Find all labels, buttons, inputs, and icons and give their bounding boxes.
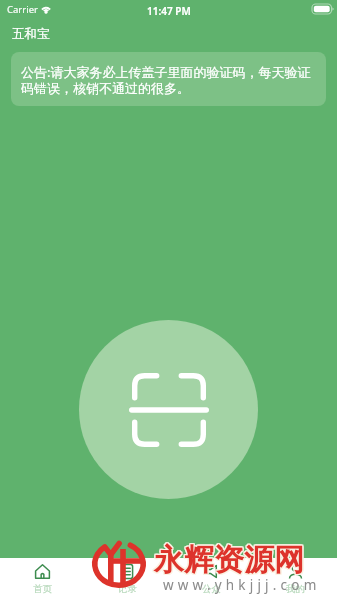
- staticText: 永辉资源网: [154, 540, 304, 578]
- staticText: 公告:请大家务必上传盖子里面的验证码，每天验证码错误，核销不通过的很多。: [21, 63, 319, 97]
- button[interactable]: 首页: [0, 558, 85, 600]
- staticText: 五和宝: [12, 26, 50, 42]
- staticText: www.yhkjjj.com: [163, 576, 321, 594]
- button[interactable]: 我的: [253, 558, 337, 600]
- staticText: 永辉资源网: [153, 542, 303, 580]
- staticText: 永辉资源网: [155, 541, 305, 579]
- button[interactable]: 扫一扫: [79, 320, 258, 499]
- button[interactable]: 公众: [169, 558, 253, 600]
- staticText: 公众: [202, 583, 221, 595]
- staticText: Carrier: [7, 3, 38, 16]
- staticText: 11:47 PM: [147, 4, 191, 18]
- staticText: 永辉资源网: [153, 540, 303, 578]
- staticText: 永辉资源网: [155, 540, 305, 578]
- staticText: 我的: [286, 583, 305, 595]
- staticText: 永辉资源网: [154, 541, 304, 579]
- staticText: 永辉资源网: [153, 541, 303, 579]
- button[interactable]: 公告:请大家务必上传盖子里面的验证码，每天验证码错误，核销不通过的很多。: [11, 52, 326, 106]
- button[interactable]: 记录: [85, 558, 169, 600]
- staticText: 记录: [118, 583, 137, 595]
- staticText: 首页: [33, 583, 52, 595]
- staticText: 永辉资源网: [155, 542, 305, 580]
- staticText: 永辉资源网: [154, 542, 304, 580]
